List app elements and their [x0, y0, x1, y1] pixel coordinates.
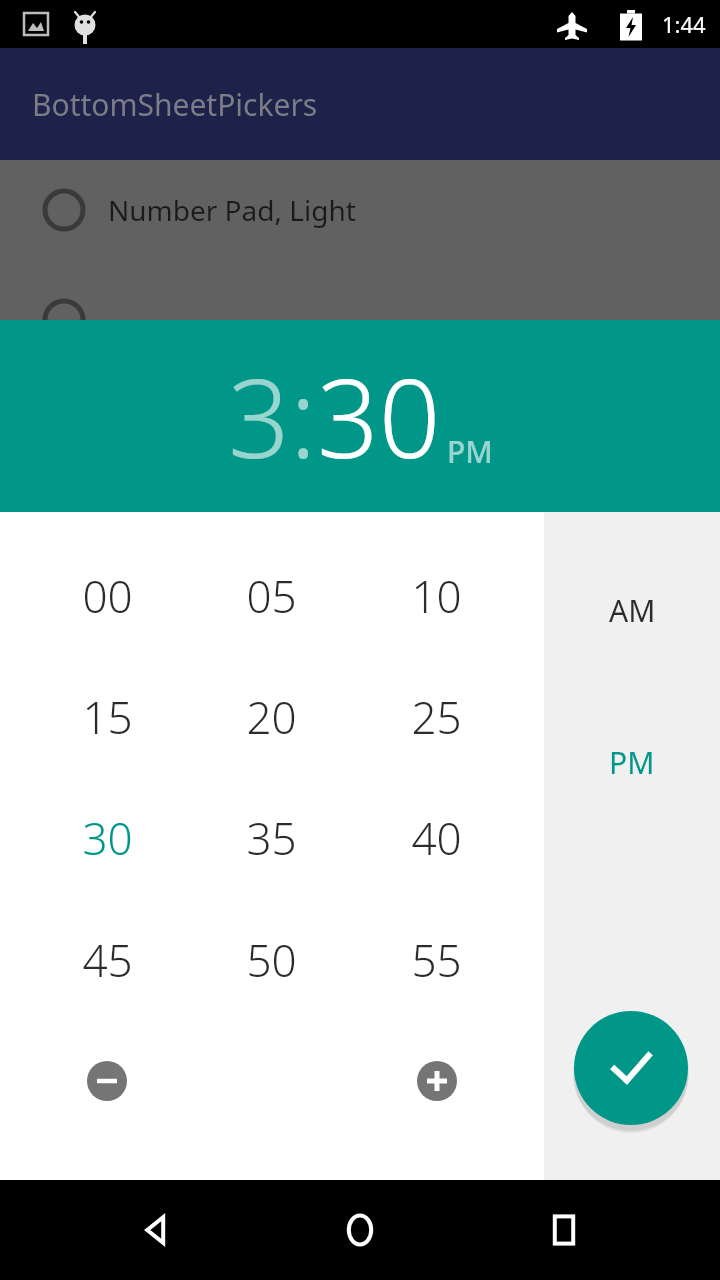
button[interactable]: Decrease minutes: [73, 1047, 141, 1115]
staticText: 25: [411, 687, 462, 747]
staticText: 15: [82, 687, 133, 747]
button[interactable]: Recent apps: [516, 1182, 612, 1278]
button[interactable]: AM: [544, 570, 720, 650]
button[interactable]: PM: [447, 431, 493, 472]
button[interactable]: 40: [376, 800, 496, 876]
staticText: Number Pad, Light: [108, 191, 356, 229]
button[interactable]: 20: [211, 679, 331, 755]
button[interactable]: Confirm time: [574, 1011, 688, 1125]
button[interactable]: Back: [108, 1182, 204, 1278]
staticText: 30: [82, 808, 133, 868]
button[interactable]: 10: [376, 558, 496, 634]
staticText: 00: [82, 566, 133, 626]
button[interactable]: Home: [312, 1182, 408, 1278]
button[interactable]: 55: [376, 922, 496, 998]
button[interactable]: 00: [47, 558, 167, 634]
button[interactable]: PM: [544, 722, 720, 802]
button[interactable]: 25: [376, 679, 496, 755]
staticText: 35: [246, 808, 297, 868]
staticText: 55: [411, 930, 462, 990]
button[interactable]: 30: [47, 800, 167, 876]
staticText: 50: [246, 930, 297, 990]
staticText: 20: [246, 687, 297, 747]
button[interactable]: 05: [211, 558, 331, 634]
staticText: BottomSheetPickers: [32, 84, 318, 125]
button[interactable]: 50: [211, 922, 331, 998]
button[interactable]: 45: [47, 922, 167, 998]
staticText: 1:44: [662, 9, 706, 39]
staticText: 40: [411, 808, 462, 868]
staticText: 05: [246, 566, 297, 626]
button[interactable]: 35: [211, 800, 331, 876]
button[interactable]: Number Pad, Light: [0, 160, 720, 260]
staticText: 45: [82, 930, 133, 990]
button[interactable]: Increase minutes: [403, 1047, 471, 1115]
button[interactable]: 30: [317, 343, 441, 490]
staticText: AM: [609, 590, 656, 631]
staticText: PM: [609, 742, 655, 783]
staticText: :: [290, 343, 317, 490]
button[interactable]: 15: [47, 679, 167, 755]
staticText: 10: [411, 566, 462, 626]
button[interactable]: 3: [228, 343, 290, 490]
